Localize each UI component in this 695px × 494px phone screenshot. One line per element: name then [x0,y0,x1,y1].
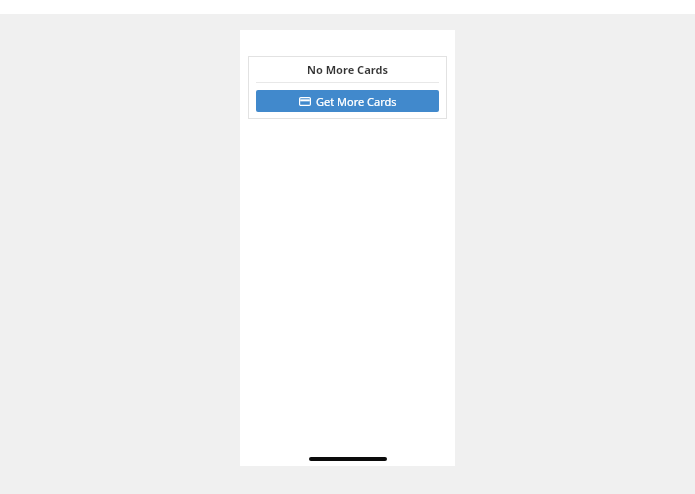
staticText: Get More Cards [316,94,397,109]
staticText: No More Cards [307,62,388,77]
button[interactable]: Get More Cards [256,90,439,112]
